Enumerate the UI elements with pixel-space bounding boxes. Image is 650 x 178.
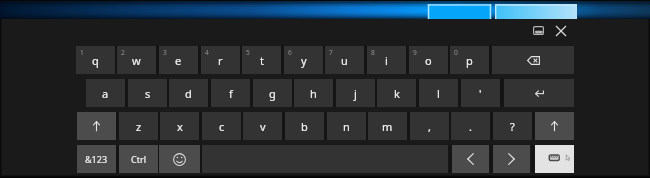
button[interactable]: m xyxy=(368,112,407,140)
button[interactable]: 0 xyxy=(450,46,489,74)
staticText: , xyxy=(428,119,431,134)
staticText: 6 xyxy=(288,48,292,57)
staticText: b xyxy=(301,119,308,134)
staticText: 1 xyxy=(80,48,84,57)
button[interactable]: d xyxy=(169,79,208,107)
button[interactable]: Shift xyxy=(77,112,116,140)
button[interactable]: 3 xyxy=(159,46,198,74)
staticText: p xyxy=(466,53,473,68)
staticText: l xyxy=(437,86,440,101)
button[interactable]: Emoji xyxy=(159,145,200,173)
staticText: 7 xyxy=(329,48,333,57)
button[interactable]: Shift xyxy=(535,112,574,140)
button[interactable]: Right xyxy=(493,145,530,173)
staticText: s xyxy=(145,86,151,101)
button[interactable]: 9 xyxy=(409,46,448,74)
staticText: x xyxy=(177,119,183,134)
button[interactable]: Left xyxy=(452,145,489,173)
button[interactable]: n xyxy=(327,112,366,140)
staticText: ? xyxy=(510,119,515,134)
button[interactable]: 7 xyxy=(325,46,364,74)
button[interactable]: 1 xyxy=(76,46,115,74)
staticText: y xyxy=(301,53,307,68)
staticText: u xyxy=(341,53,348,68)
button[interactable]: . xyxy=(451,112,490,140)
staticText: q xyxy=(92,53,99,68)
button[interactable]: 4 xyxy=(201,46,240,74)
staticText: o xyxy=(425,53,432,68)
staticText: e xyxy=(175,53,182,68)
staticText: n xyxy=(343,119,350,134)
staticText: . xyxy=(469,119,472,134)
button[interactable]: Close xyxy=(549,22,573,39)
button[interactable]: 5 xyxy=(242,46,281,74)
button[interactable]: 8 xyxy=(367,46,406,74)
staticText: t xyxy=(260,53,264,68)
staticText: 3 xyxy=(163,48,167,57)
button[interactable]: Hide keyboard xyxy=(535,145,574,173)
staticText: i xyxy=(385,53,388,68)
staticText: c xyxy=(219,119,225,134)
button[interactable]: ? xyxy=(493,112,532,140)
button[interactable]: s xyxy=(128,79,167,107)
staticText: f xyxy=(229,86,233,101)
staticText: 5 xyxy=(246,48,250,57)
button[interactable]: a xyxy=(86,79,125,107)
staticText: 0 xyxy=(454,48,458,57)
button[interactable]: l xyxy=(419,79,458,107)
staticText: k xyxy=(394,86,400,101)
button[interactable]: Backspace xyxy=(492,46,574,74)
staticText: w xyxy=(132,53,141,68)
staticText: d xyxy=(185,86,192,101)
staticText: &123 xyxy=(85,153,108,165)
button[interactable]: Ctrl xyxy=(119,145,158,173)
staticText: a xyxy=(102,86,109,101)
button[interactable]: ' xyxy=(461,79,500,107)
staticText: j xyxy=(354,86,357,101)
staticText: 9 xyxy=(413,48,417,57)
staticText: g xyxy=(269,86,276,101)
button[interactable]: g xyxy=(253,79,292,107)
button[interactable]: j xyxy=(336,79,375,107)
staticText: z xyxy=(136,119,142,134)
button[interactable]: Enter xyxy=(504,79,574,107)
staticText: 8 xyxy=(371,48,375,57)
button[interactable]: f xyxy=(211,79,250,107)
staticText: ' xyxy=(479,86,482,101)
button[interactable]: 6 xyxy=(284,46,323,74)
button[interactable]: b xyxy=(285,112,324,140)
button[interactable]: c xyxy=(202,112,241,140)
staticText: r xyxy=(218,53,223,68)
button[interactable]: v xyxy=(243,112,282,140)
staticText: Ctrl xyxy=(131,153,146,165)
staticText: m xyxy=(382,119,393,134)
staticText: 4 xyxy=(205,48,209,57)
staticText: h xyxy=(310,86,317,101)
button[interactable]: x xyxy=(160,112,199,140)
button[interactable]: 2 xyxy=(117,46,156,74)
button[interactable]: Symbols xyxy=(77,145,116,173)
button[interactable]: Dock keyboard xyxy=(526,22,550,39)
button[interactable]: z xyxy=(119,112,158,140)
staticText: 2 xyxy=(121,48,125,57)
button[interactable]: k xyxy=(377,79,416,107)
staticText: v xyxy=(260,119,266,134)
button[interactable]: , xyxy=(410,112,449,140)
button[interactable]: h xyxy=(294,79,333,107)
